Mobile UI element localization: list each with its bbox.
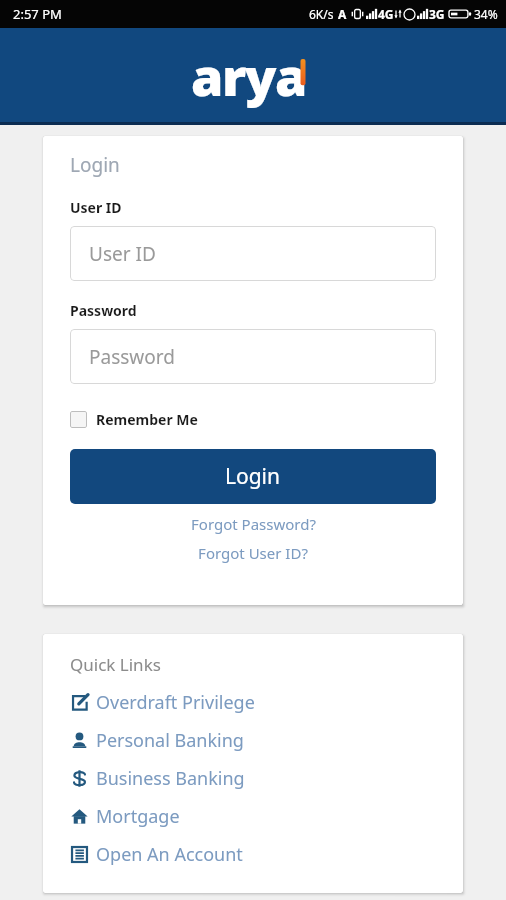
staticText: Business Banking [96, 766, 245, 791]
button[interactable]: Mortgage [70, 804, 443, 829]
staticText: User ID [70, 198, 122, 217]
staticText: 4G [378, 6, 394, 22]
staticText: arya [191, 40, 306, 111]
staticText: Forgot Password? [191, 514, 316, 534]
button[interactable]: Password [70, 329, 436, 384]
button[interactable]: Forgot User ID? [70, 543, 436, 563]
staticText: 2:57 PM [13, 5, 62, 23]
staticText: A [338, 6, 347, 22]
staticText: Overdraft Privilege [96, 690, 255, 715]
staticText: Remember Me [96, 410, 198, 429]
staticText: 34% [474, 6, 498, 22]
button[interactable]: Personal Banking [70, 728, 443, 753]
staticText: Open An Account [96, 842, 243, 867]
staticText: Login [225, 462, 281, 491]
staticText: 6K/s [309, 6, 334, 22]
staticText: Forgot User ID? [198, 543, 308, 563]
button[interactable]: Open An Account [70, 842, 443, 867]
staticText: 3G [429, 6, 445, 22]
button[interactable]: Login [70, 449, 436, 504]
staticText: User ID [89, 241, 156, 267]
button[interactable]: User ID [70, 226, 436, 281]
staticText: Password [89, 344, 175, 370]
staticText: Personal Banking [96, 728, 244, 753]
staticText: Mortgage [96, 804, 180, 829]
staticText: Password [70, 301, 137, 320]
staticText: Login [70, 152, 120, 178]
button[interactable]: Forgot Password? [70, 514, 436, 534]
button[interactable]: Business Banking [70, 766, 443, 791]
button[interactable]: Overdraft Privilege [70, 690, 443, 715]
staticText: Quick Links [70, 653, 161, 676]
button[interactable]: Remember Me [70, 410, 198, 429]
